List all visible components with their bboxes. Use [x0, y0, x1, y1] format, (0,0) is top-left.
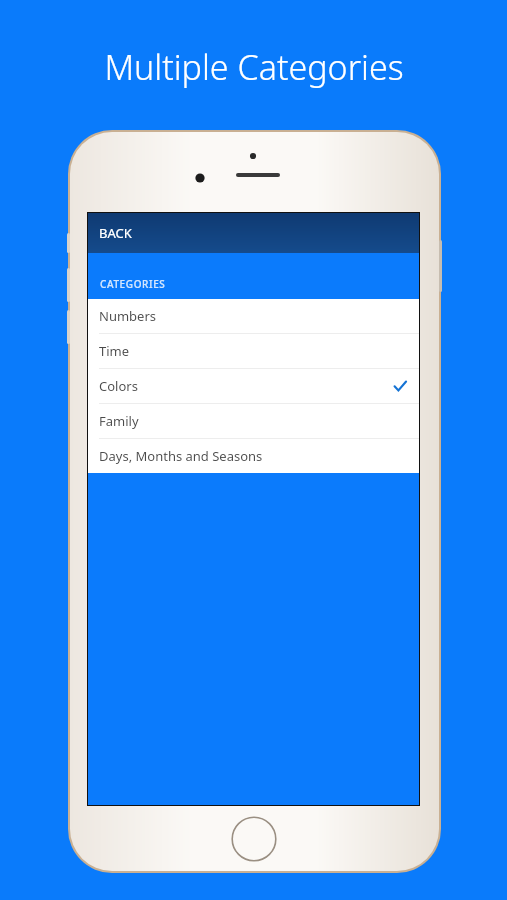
- staticText: Multiple Categories: [104, 44, 404, 90]
- button[interactable]: Time: [88, 334, 419, 368]
- button[interactable]: Family: [88, 404, 419, 438]
- staticText: Family: [99, 412, 408, 430]
- staticText: Colors: [99, 377, 392, 395]
- button[interactable]: Days, Months and Seasons: [88, 439, 419, 473]
- staticText: Numbers: [99, 307, 408, 325]
- button[interactable]: Numbers: [88, 299, 419, 333]
- button[interactable]: Home: [231, 816, 277, 862]
- button[interactable]: Colors: [88, 369, 419, 403]
- staticText: BACK: [99, 224, 132, 242]
- staticText: CATEGORIES: [100, 277, 166, 291]
- button[interactable]: BACK: [88, 213, 419, 253]
- staticText: Days, Months and Seasons: [99, 447, 408, 465]
- staticText: Time: [99, 342, 408, 360]
